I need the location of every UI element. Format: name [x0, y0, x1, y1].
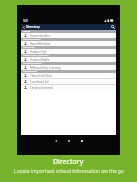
staticText: Middle School / Junior High — [23, 54, 49, 57]
staticText: Elementary Schools — [23, 62, 42, 65]
button[interactable]: Recent apps — [77, 135, 86, 146]
button[interactable]: Hudson Middle — [21, 57, 116, 62]
staticText: Board of Education — [23, 38, 41, 41]
staticText: Administration — [23, 70, 37, 73]
button[interactable]: Superintendent — [21, 33, 116, 38]
button[interactable]: Back — [21, 24, 26, 30]
staticText: Directory — [53, 157, 84, 167]
staticText: Coordinate Intl — [30, 80, 49, 84]
button[interactable]: Coordinate Intl — [21, 79, 116, 84]
button[interactable]: Search — [109, 24, 116, 30]
button[interactable]: Chase Knoll Elem — [21, 73, 116, 78]
staticText: Chase Knoll Elem — [30, 74, 52, 78]
staticText: High School — [23, 46, 35, 49]
button[interactable]: Home — [64, 135, 73, 146]
staticText: Board Members — [30, 42, 51, 46]
staticText: 9:41 — [23, 19, 29, 23]
staticText: Locate important school information on t… — [14, 168, 124, 175]
button[interactable]: Carolina Intermed — [21, 85, 116, 90]
staticText: Superintendent — [30, 34, 50, 38]
button[interactable]: Back — [51, 135, 60, 146]
button[interactable]: Hudson High — [21, 49, 116, 54]
staticText: General — [23, 30, 31, 33]
staticText: Carolina Intermed — [30, 86, 53, 90]
staticText: Directory — [26, 25, 40, 29]
button[interactable]: Millwood Early Learning — [21, 65, 116, 70]
button[interactable]: Board Members — [21, 41, 116, 46]
staticText: Millwood Early Learning — [30, 66, 61, 70]
staticText: Hudson High — [30, 50, 47, 54]
staticText: Hudson Middle — [30, 58, 50, 62]
